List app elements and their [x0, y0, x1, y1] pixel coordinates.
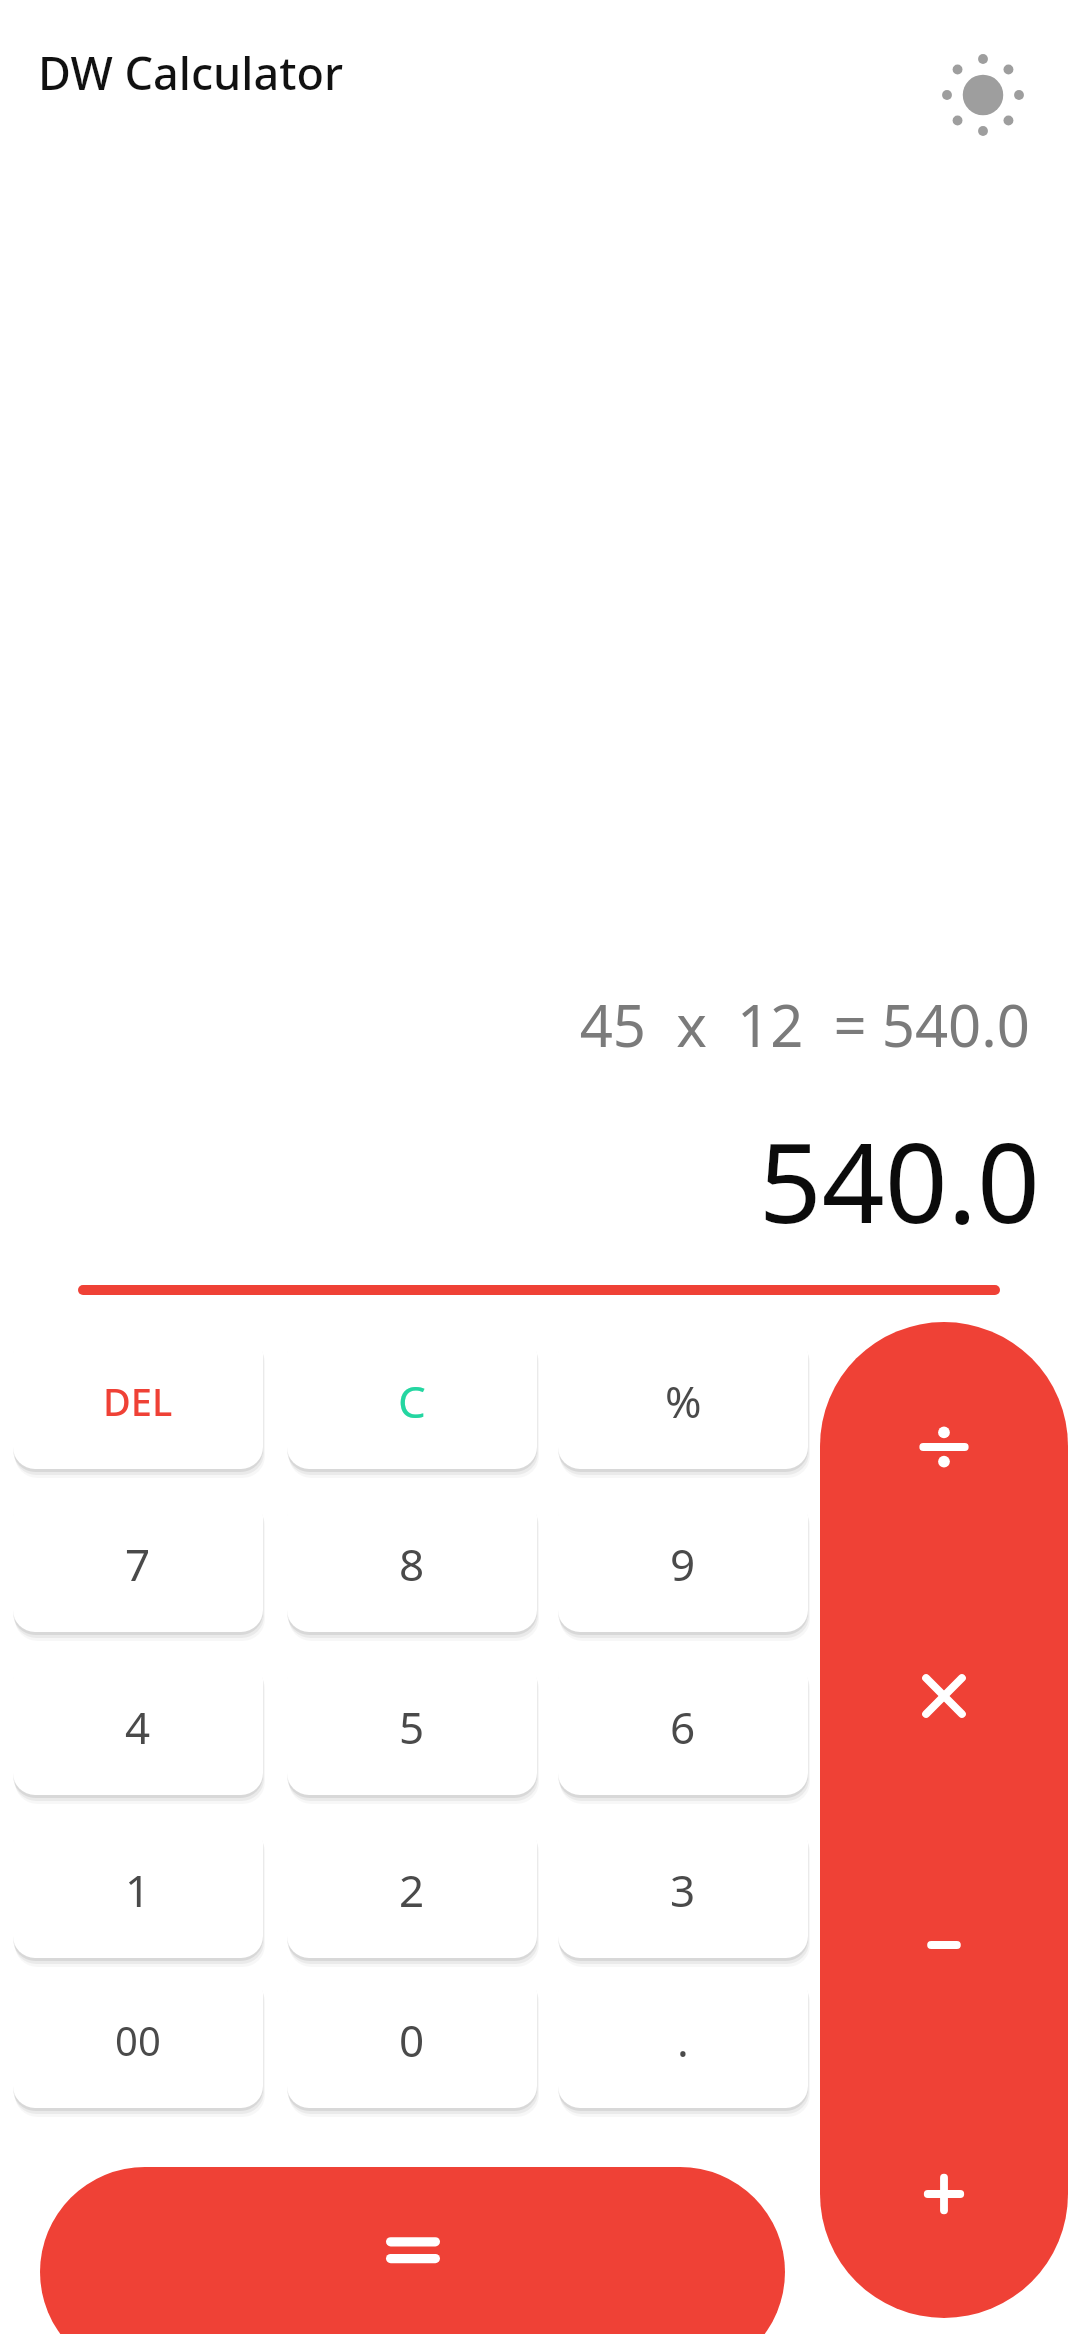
button[interactable]: DEL	[13, 1332, 263, 1469]
staticText: .	[677, 2010, 689, 2070]
staticText: 4	[125, 1697, 151, 1757]
button[interactable]: 00	[13, 1971, 263, 2108]
staticText: DEL	[103, 1375, 173, 1427]
button[interactable]: 2	[287, 1821, 537, 1958]
button[interactable]: 4	[13, 1658, 263, 1795]
button[interactable]: C	[287, 1332, 537, 1469]
staticText: C	[398, 1371, 426, 1431]
staticText: 0	[399, 2010, 425, 2070]
button[interactable]: %	[558, 1332, 808, 1469]
button[interactable]: 6	[558, 1658, 808, 1795]
button[interactable]: Equals	[40, 2167, 785, 2334]
staticText: %	[665, 1371, 702, 1431]
staticText: 7	[125, 1534, 151, 1594]
button[interactable]: 7	[13, 1495, 263, 1632]
staticText: 8	[399, 1534, 425, 1594]
button[interactable]: Multiply	[820, 1571, 1068, 1820]
staticText: 5	[399, 1697, 425, 1757]
button[interactable]: Add	[820, 2069, 1068, 2318]
staticText: 540.0	[0, 1105, 1040, 1255]
button[interactable]: 9	[558, 1495, 808, 1632]
button[interactable]: 8	[287, 1495, 537, 1632]
staticText: 2	[399, 1860, 425, 1920]
button[interactable]: 0	[287, 1971, 537, 2108]
staticText: 6	[670, 1697, 696, 1757]
staticText: DW Calculator	[38, 42, 343, 103]
button[interactable]: .	[558, 1971, 808, 2108]
button[interactable]	[820, 1322, 1068, 2318]
staticText: 00	[115, 2013, 161, 2067]
staticText: 3	[670, 1860, 696, 1920]
staticText: 9	[670, 1534, 696, 1594]
button[interactable]: 5	[287, 1658, 537, 1795]
button[interactable]: 1	[13, 1821, 263, 1958]
button[interactable]: Subtract	[820, 1820, 1068, 2069]
button[interactable]: 3	[558, 1821, 808, 1958]
button[interactable]: Divide	[820, 1322, 1068, 1571]
button[interactable]: Toggle theme brightness	[923, 35, 1043, 155]
staticText: 1	[125, 1860, 151, 1920]
staticText: 45 x 12 = 540.0	[0, 985, 1030, 1064]
